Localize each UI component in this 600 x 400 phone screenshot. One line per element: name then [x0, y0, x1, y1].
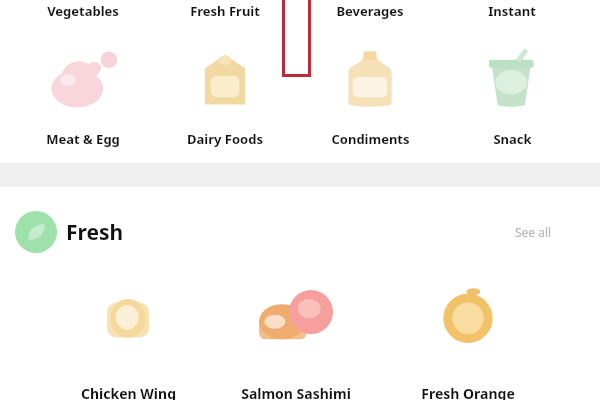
button[interactable]: Meat & Egg	[19, 44, 147, 148]
staticText: Vegetables	[47, 2, 119, 20]
staticText: Beverages	[336, 2, 404, 20]
staticText: Instant	[488, 2, 536, 20]
staticText: Condiments	[331, 130, 410, 148]
staticText: See all	[515, 224, 552, 240]
button[interactable]: Condiments	[306, 44, 434, 148]
button[interactable]: Chicken Wing	[53, 276, 203, 400]
button[interactable]: Fresh	[0, 208, 600, 256]
button[interactable]: Dairy Foods	[161, 44, 289, 148]
staticText: Fresh	[66, 218, 124, 247]
staticText: Chicken Wing	[81, 384, 176, 400]
staticText: Fresh Orange	[421, 384, 515, 400]
button[interactable]: Snack	[448, 44, 576, 148]
staticText: Snack	[493, 130, 532, 148]
button[interactable]: Salmon Sashimi	[221, 276, 371, 400]
staticText: Meat & Egg	[46, 130, 120, 148]
button[interactable]: Fresh Orange	[393, 276, 543, 400]
staticText: Salmon Sashimi	[241, 384, 351, 400]
staticText: Fresh Fruit	[190, 2, 260, 20]
staticText: Dairy Foods	[187, 130, 263, 148]
